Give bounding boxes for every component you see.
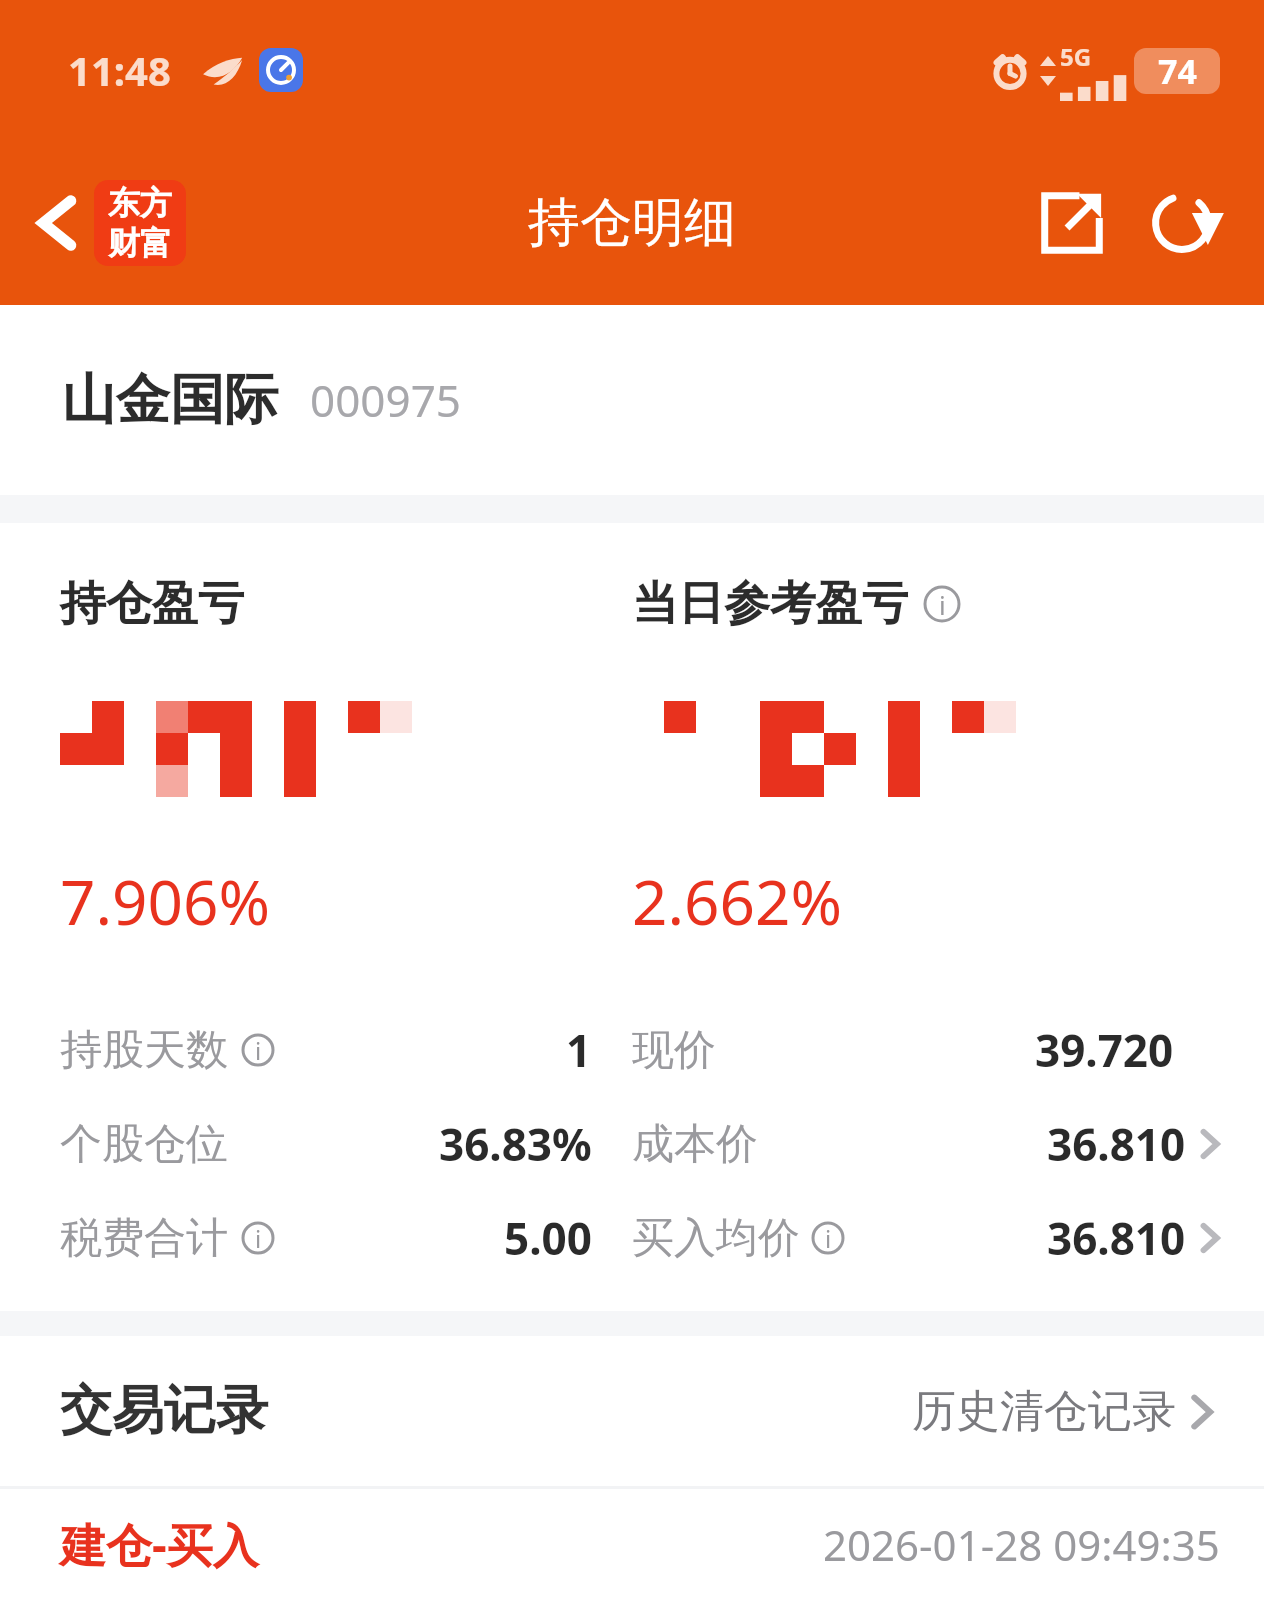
staticText: i [825, 1222, 832, 1255]
staticText: 历史清仓记录 [912, 1384, 1176, 1439]
button[interactable]: 持股天数 [60, 1003, 592, 1097]
staticText: 当日参考盈亏 [632, 575, 908, 633]
staticText: 东方 [108, 183, 172, 223]
staticText: 2026-01-28 09:49:35 [823, 1516, 1220, 1573]
button[interactable]: 历史清仓记录 [906, 1378, 1220, 1445]
staticText: 现价 [632, 1024, 716, 1077]
staticText: 2.662% [632, 859, 842, 943]
staticText: 39.720 [1035, 1020, 1174, 1080]
staticText: 7.906% [60, 859, 270, 943]
button[interactable]: 建仓-买入 [60, 1489, 1220, 1599]
staticText: i [255, 1222, 262, 1255]
button[interactable]: 现价 [632, 1003, 1220, 1097]
staticText: 5G [1060, 40, 1092, 73]
staticText: 持仓明细 [528, 190, 736, 256]
staticText: 山金国际 [62, 366, 278, 434]
staticText: 税费合计 [60, 1212, 228, 1265]
staticText: 000975 [310, 370, 462, 430]
staticText: 持仓盈亏 [60, 575, 244, 633]
button[interactable]: 个股仓位 [60, 1097, 592, 1191]
staticText: i [255, 1034, 262, 1067]
button[interactable]: Share [1028, 179, 1116, 267]
button[interactable]: 成本价 [632, 1097, 1220, 1191]
staticText: 74 [1158, 48, 1197, 94]
button[interactable]: 买入均价 [632, 1191, 1220, 1285]
staticText: 36.810 [1047, 1114, 1186, 1174]
staticText: 11:48 [68, 43, 171, 97]
staticText: 36.83% [439, 1114, 592, 1174]
staticText: 买入均价 [632, 1212, 800, 1265]
staticText: 1 [566, 1020, 592, 1080]
staticText: 财富 [108, 223, 172, 263]
staticText: 交易记录 [60, 1378, 268, 1444]
staticText: i [939, 587, 946, 622]
staticText: 个股仓位 [60, 1118, 228, 1171]
button[interactable]: Refresh [1138, 179, 1226, 267]
staticText: 36.810 [1047, 1208, 1186, 1268]
staticText: 成本价 [632, 1118, 758, 1171]
button[interactable]: 税费合计 [60, 1191, 592, 1285]
staticText: 持股天数 [60, 1024, 228, 1077]
button[interactable]: Back [26, 172, 194, 274]
staticText: 5.00 [504, 1208, 592, 1268]
staticText: 建仓-买入 [60, 1513, 259, 1576]
